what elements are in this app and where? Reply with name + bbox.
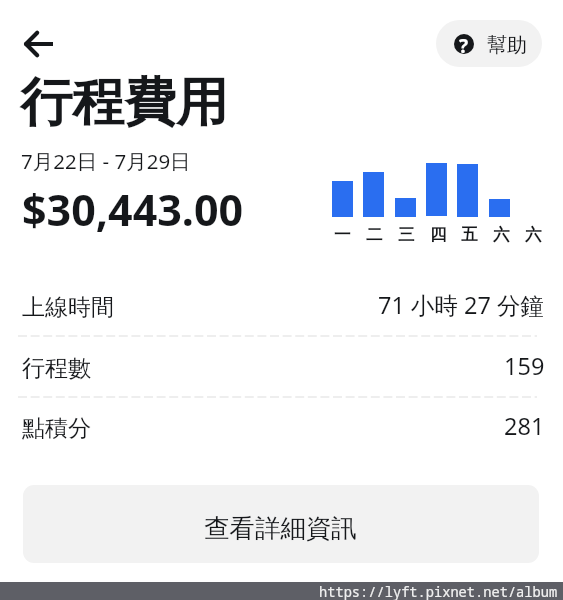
staticText: 71 小時 27 分鐘 bbox=[378, 289, 545, 321]
button[interactable]: 行程數 bbox=[0, 349, 563, 409]
staticText: 六 bbox=[525, 224, 542, 245]
button[interactable]: ? bbox=[436, 20, 542, 67]
button[interactable]: Back bbox=[17, 22, 61, 66]
staticText: 幫助 bbox=[487, 33, 527, 58]
staticText: https://lyft.pixnet.net/album bbox=[319, 582, 558, 600]
staticText: 六 bbox=[493, 224, 510, 245]
staticText: 點積分 bbox=[22, 414, 91, 443]
staticText: 二 bbox=[366, 224, 383, 245]
staticText: 7月22日 - 7月29日 bbox=[21, 147, 191, 175]
button[interactable]: 上線時間 bbox=[0, 288, 563, 348]
button[interactable]: 查看詳細資訊 bbox=[23, 485, 539, 563]
staticText: 五 bbox=[461, 224, 478, 245]
staticText: 查看詳細資訊 bbox=[204, 512, 357, 544]
staticText: 四 bbox=[430, 224, 447, 245]
staticText: 行程費用 bbox=[20, 70, 228, 136]
staticText: 行程數 bbox=[22, 354, 91, 383]
staticText: 上線時間 bbox=[22, 293, 114, 322]
staticText: 281 bbox=[504, 410, 545, 442]
button[interactable]: 點積分 bbox=[0, 409, 563, 469]
staticText: 一 bbox=[334, 224, 351, 245]
staticText: ? bbox=[459, 33, 469, 53]
staticText: 三 bbox=[398, 224, 415, 245]
staticText: 159 bbox=[504, 350, 545, 382]
staticText: $30,443.00 bbox=[22, 180, 244, 239]
